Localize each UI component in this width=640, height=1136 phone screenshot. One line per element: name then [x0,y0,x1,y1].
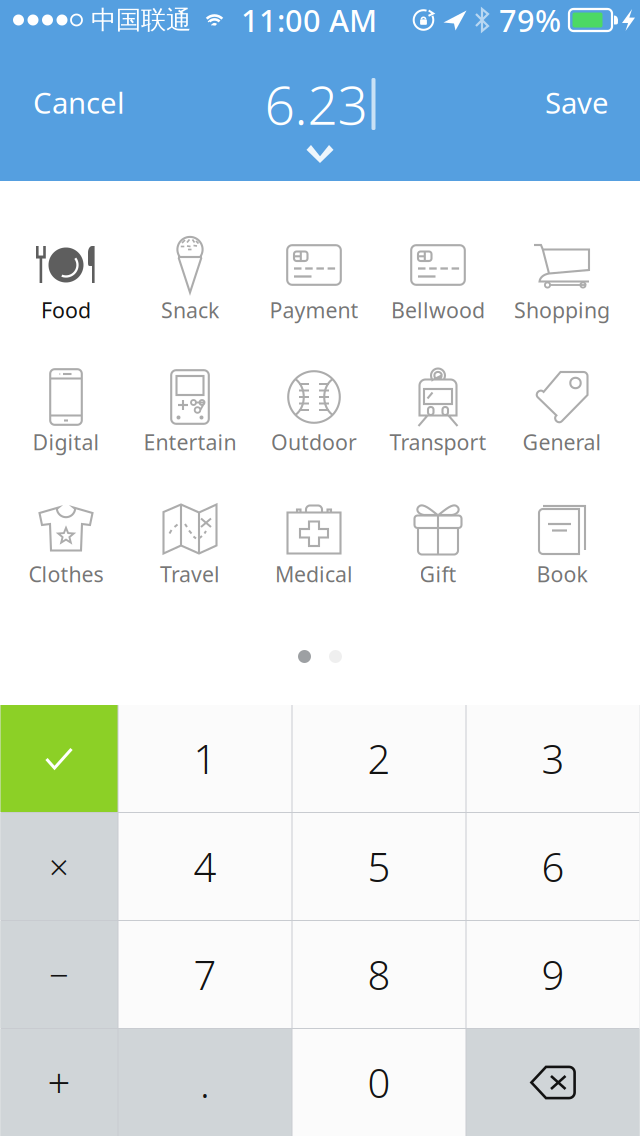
staticText: Medical [275,560,353,588]
button[interactable]: Delete [466,1029,639,1136]
staticText: 中国联通 [91,4,191,35]
staticText: 3 [541,732,564,785]
staticText: Payment [269,296,358,324]
staticText: General [522,428,601,456]
staticText: 8 [367,948,390,1001]
button[interactable]: 0 [292,1029,465,1136]
staticText: Transport [389,428,486,456]
staticText: 7 [193,948,216,1001]
staticText: + [47,1056,70,1109]
staticText: − [49,951,69,997]
button[interactable]: + [0,1029,117,1136]
button[interactable]: 8 [292,921,465,1028]
staticText: 0 [367,1056,390,1109]
staticText: . [200,1056,210,1109]
staticText: 4 [193,840,216,893]
staticText: Bellwood [391,296,485,324]
button[interactable]: Digital [4,366,128,456]
button[interactable]: 3 [466,705,639,812]
button[interactable]: Clothes [4,498,128,588]
staticText: 79% [499,0,561,40]
button[interactable]: Shopping [500,234,624,324]
staticText: 6.23 [264,69,367,139]
button[interactable]: 6 [466,813,639,920]
staticText: Shopping [514,296,610,324]
button[interactable]: 4 [118,813,291,920]
staticText: 2 [367,732,390,785]
button[interactable]: Choose account [298,137,341,171]
staticText: 6 [541,840,564,893]
button[interactable]: 5 [292,813,465,920]
staticText: 11:00 AM [241,0,377,40]
staticText: Clothes [28,560,103,588]
button[interactable]: 2 [292,705,465,812]
staticText: Cancel [33,83,125,122]
button[interactable]: Bellwood [376,234,500,324]
staticText: Book [536,560,587,588]
button[interactable]: − [0,921,117,1028]
button[interactable]: Gift [376,498,500,588]
button[interactable]: Snack [128,234,252,324]
button[interactable]: Medical [252,498,376,588]
button[interactable]: Payment [252,234,376,324]
button[interactable]: General [500,366,624,456]
button[interactable]: Outdoor [252,366,376,456]
button[interactable]: 1 [118,705,291,812]
staticText: 5 [367,840,390,893]
button[interactable]: 9 [466,921,639,1028]
button[interactable]: Save [527,71,627,134]
button[interactable]: Confirm [0,705,117,812]
staticText: × [49,843,69,889]
button[interactable]: Travel [128,498,252,588]
staticText: Outdoor [271,428,357,456]
staticText: Travel [160,560,220,588]
staticText: 9 [541,948,564,1001]
button[interactable]: Cancel [15,71,143,134]
staticText: Snack [161,296,219,324]
button[interactable]: 7 [118,921,291,1028]
staticText: Save [545,83,609,122]
button[interactable]: Transport [376,366,500,456]
button[interactable]: Book [500,498,624,588]
staticText: Food [41,296,91,324]
button[interactable]: Food [4,234,128,324]
button[interactable]: × [0,813,117,920]
button[interactable]: Entertain [128,366,252,456]
staticText: Gift [419,560,456,588]
button[interactable]: . [118,1029,291,1136]
staticText: Digital [32,428,99,456]
staticText: 1 [193,732,216,785]
staticText: Entertain [143,428,236,456]
